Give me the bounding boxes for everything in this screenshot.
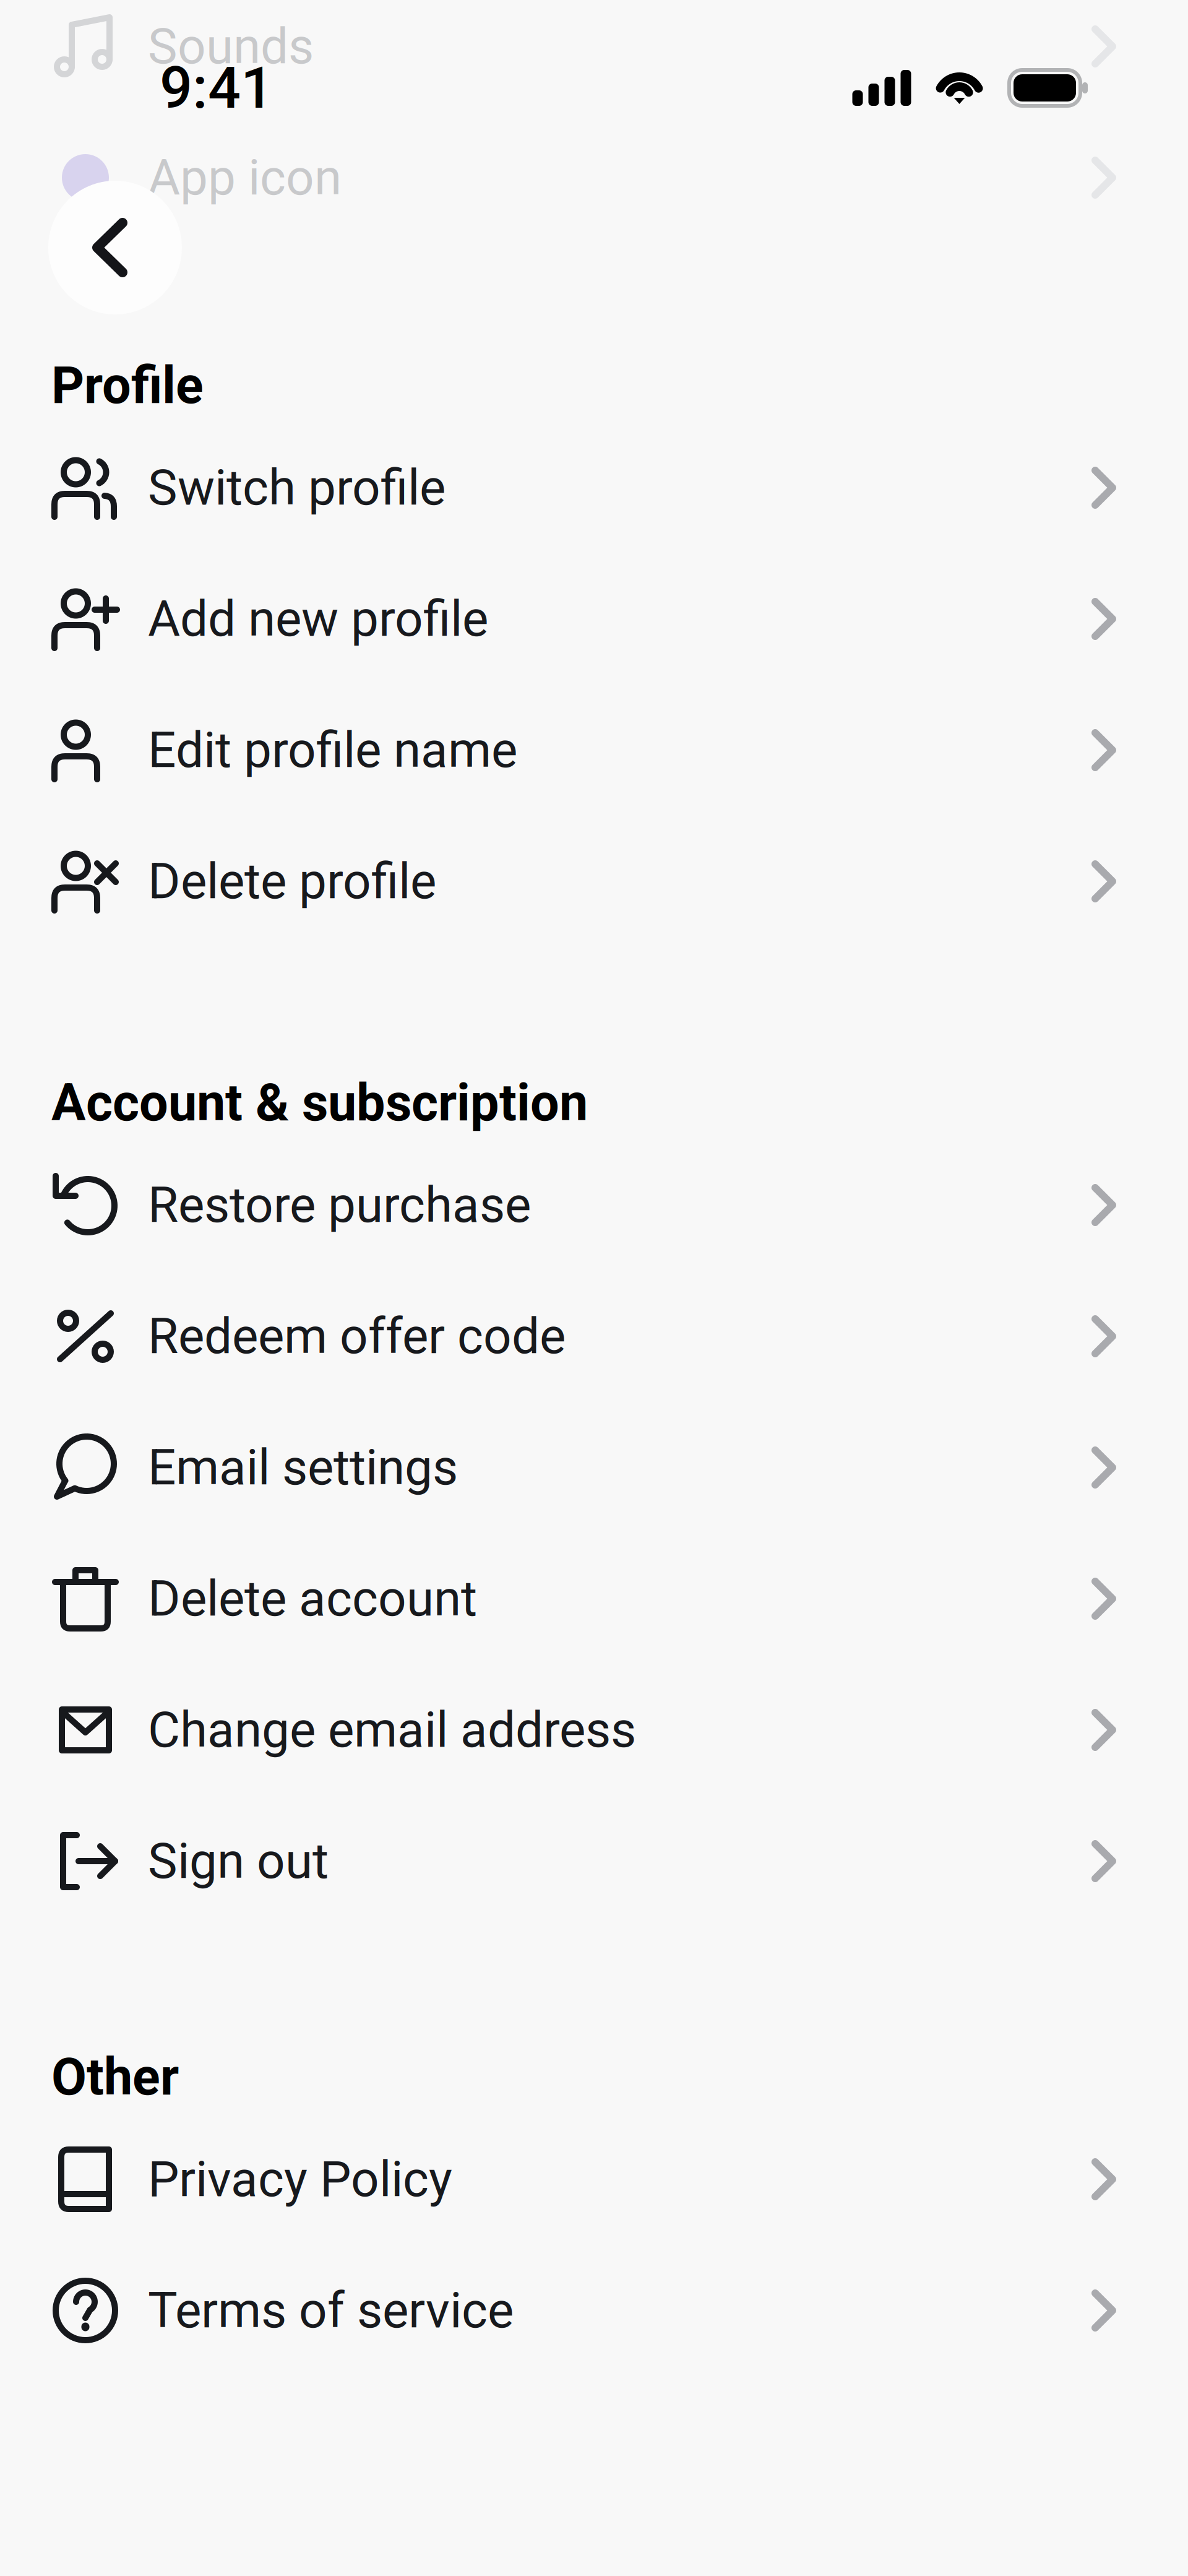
- button[interactable]: Change email address: [0, 1664, 1188, 1796]
- button[interactable]: Sign out: [0, 1796, 1188, 1927]
- staticText: Sounds: [148, 17, 314, 75]
- button[interactable]: Privacy Policy: [0, 2114, 1188, 2245]
- staticText: Delete account: [148, 1570, 477, 1628]
- button[interactable]: Add new profile: [0, 553, 1188, 685]
- button[interactable]: Redeem offer code: [0, 1271, 1188, 1402]
- button[interactable]: Email settings: [0, 1402, 1188, 1533]
- staticText: Email settings: [148, 1438, 458, 1497]
- staticText: Privacy Policy: [148, 2150, 452, 2208]
- button[interactable]: Delete account: [0, 1533, 1188, 1664]
- staticText: Add new profile: [148, 590, 488, 648]
- button[interactable]: Switch profile: [0, 422, 1188, 553]
- staticText: Switch profile: [148, 459, 445, 517]
- staticText: Other: [51, 2047, 179, 2107]
- staticText: Sign out: [148, 1832, 329, 1890]
- staticText: App icon: [148, 149, 342, 207]
- staticText: Restore purchase: [148, 1176, 531, 1234]
- staticText: Terms of service: [148, 2281, 514, 2340]
- staticText: 9:41: [160, 54, 273, 122]
- button[interactable]: Delete profile: [0, 816, 1188, 947]
- staticText: Profile: [51, 356, 204, 416]
- staticText: Change email address: [148, 1701, 636, 1759]
- staticText: Edit profile name: [148, 721, 517, 779]
- button[interactable]: Edit profile name: [0, 685, 1188, 816]
- button[interactable]: Restore purchase: [0, 1139, 1188, 1271]
- staticText: Account & subscription: [51, 1073, 588, 1133]
- staticText: Delete profile: [148, 852, 436, 910]
- button[interactable]: Terms of service: [0, 2245, 1188, 2376]
- staticText: Redeem offer code: [148, 1307, 566, 1365]
- button[interactable]: Back: [48, 181, 182, 314]
